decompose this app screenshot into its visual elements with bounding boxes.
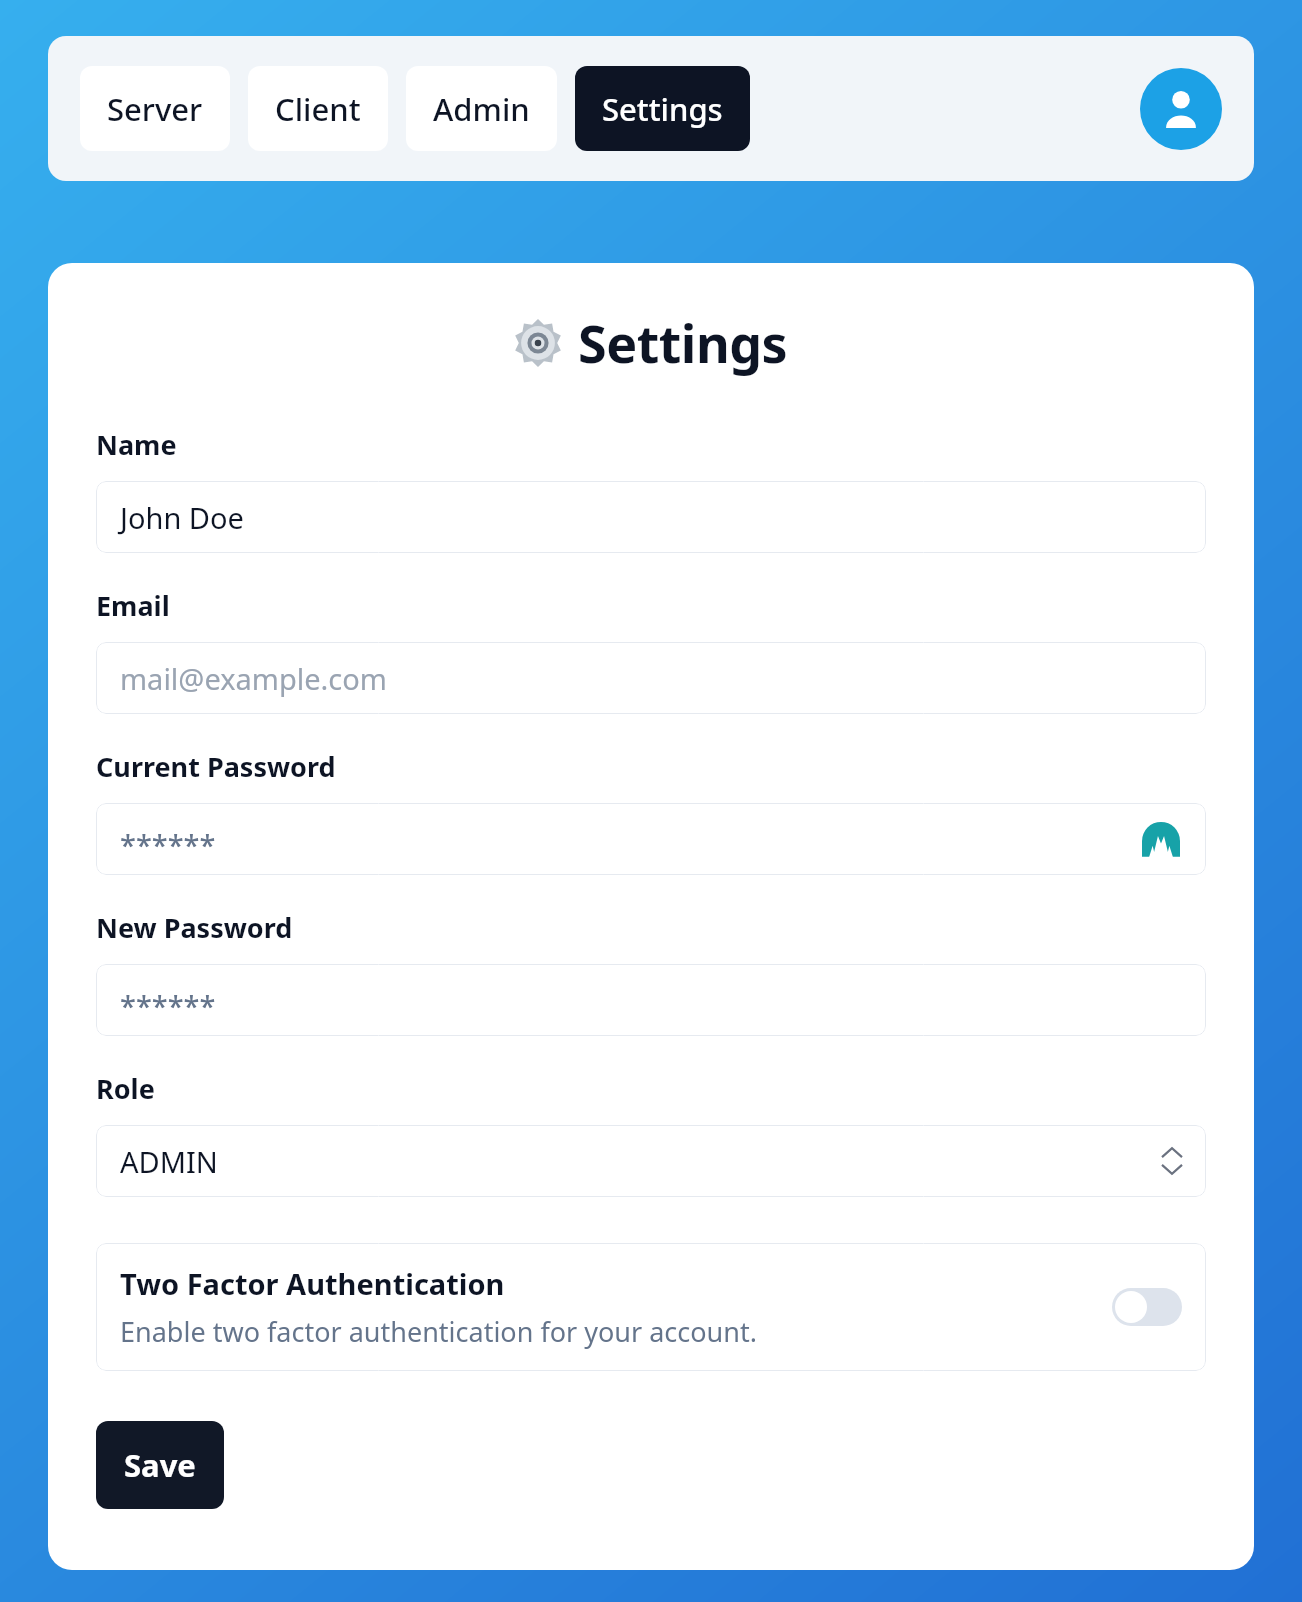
staticText: Settings (602, 88, 723, 130)
button[interactable]: ****** (96, 964, 1206, 1036)
staticText: Save (124, 1444, 196, 1486)
button[interactable]: ADMIN (96, 1125, 1206, 1197)
staticText: Settings (578, 307, 788, 378)
staticText: Server (107, 88, 203, 130)
button[interactable]: Client (248, 66, 388, 151)
button[interactable]: Server (80, 66, 230, 151)
button[interactable]: John Doe (96, 481, 1206, 553)
staticText: ****** (120, 825, 216, 864)
staticText: Role (96, 1070, 155, 1107)
staticText: Two Factor Authentication (120, 1264, 505, 1303)
button[interactable]: mail@example.com (96, 642, 1206, 714)
button[interactable]: Account (1140, 68, 1222, 150)
staticText: John Doe (120, 498, 244, 537)
staticText: Current Password (96, 748, 336, 785)
staticText: ****** (120, 986, 216, 1025)
staticText: Enable two factor authentication for you… (120, 1313, 757, 1350)
staticText: Email (96, 587, 170, 624)
button[interactable]: Password manager (1140, 818, 1182, 860)
staticText: Admin (433, 88, 530, 130)
button[interactable]: Settings (575, 66, 750, 151)
button[interactable]: Admin (406, 66, 557, 151)
staticText: mail@example.com (120, 659, 387, 698)
staticText: Client (275, 88, 361, 130)
staticText: New Password (96, 909, 293, 946)
button[interactable]: ****** (96, 803, 1206, 875)
button[interactable]: Two Factor Authentication (96, 1243, 1206, 1371)
button[interactable]: Save (96, 1421, 224, 1509)
button[interactable]: Two factor authentication toggle (1112, 1288, 1182, 1326)
staticText: Name (96, 426, 177, 463)
staticText: ADMIN (120, 1142, 218, 1181)
